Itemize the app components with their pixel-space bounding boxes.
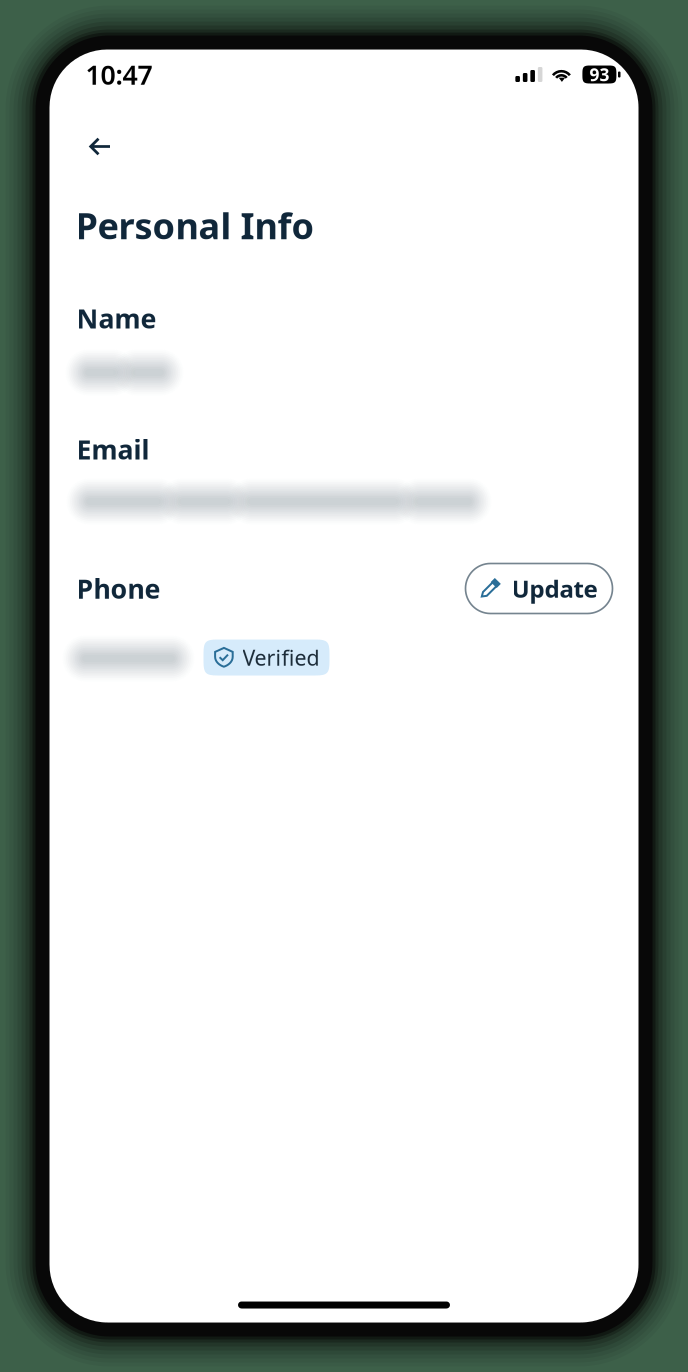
staticText: Personal Info bbox=[75, 201, 314, 249]
staticText: 10:47 bbox=[85, 57, 152, 92]
staticText: 93 bbox=[589, 63, 609, 86]
staticText: Email bbox=[76, 431, 149, 467]
staticText: Phone bbox=[76, 571, 160, 606]
staticText: Name bbox=[76, 300, 156, 336]
staticText: Verified bbox=[242, 643, 319, 672]
staticText: Update bbox=[511, 573, 597, 604]
button[interactable]: Back bbox=[49, 136, 638, 156]
button[interactable]: Update bbox=[465, 563, 612, 613]
